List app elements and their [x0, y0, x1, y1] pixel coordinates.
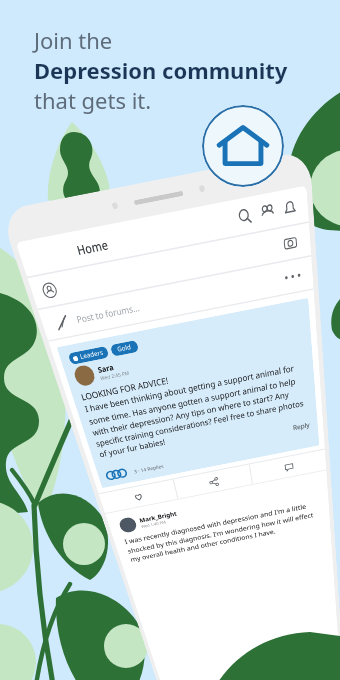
- button[interactable]: Home: [16, 185, 309, 277]
- staticText: 3 · 14 Replies: [133, 462, 164, 474]
- button[interactable]: Comment: [250, 449, 326, 484]
- staticText: Leaders: [79, 348, 104, 362]
- staticText: Reply: [293, 420, 311, 432]
- staticText: Join the: [34, 25, 113, 55]
- staticText: I have been thinking about getting a sup…: [83, 360, 310, 459]
- staticText: Wed 2:45 PM: [99, 370, 130, 381]
- staticText: I was recently diagnosed with depression…: [124, 500, 321, 564]
- other: More options: [282, 269, 303, 284]
- staticText: Mark_Bright: [138, 510, 178, 524]
- button[interactable]: Home: [202, 105, 284, 187]
- staticText: Gold: [116, 342, 133, 354]
- other: Compose: [53, 313, 72, 331]
- staticText: Wed 1:40 PM: [141, 519, 167, 529]
- other: Profile: [40, 281, 59, 300]
- button[interactable]: Like: [99, 479, 177, 513]
- other: Search: [237, 206, 253, 227]
- button[interactable]: Share: [174, 464, 252, 499]
- staticText: Depression community: [34, 55, 288, 85]
- other: Like: [133, 492, 144, 502]
- other: Groups: [259, 202, 276, 222]
- button[interactable]: Compose: [38, 256, 314, 340]
- other: Share: [208, 477, 219, 487]
- staticText: Sara: [97, 362, 116, 375]
- staticText: Home: [75, 235, 111, 258]
- staticText: Post to forums...: [75, 301, 142, 326]
- other: Camera: [283, 233, 298, 253]
- staticText: that gets it.: [34, 85, 152, 115]
- staticText: LOOKING FOR ADVICE!: [80, 375, 170, 404]
- other: Notifications: [282, 197, 298, 218]
- other: Comment: [284, 462, 294, 473]
